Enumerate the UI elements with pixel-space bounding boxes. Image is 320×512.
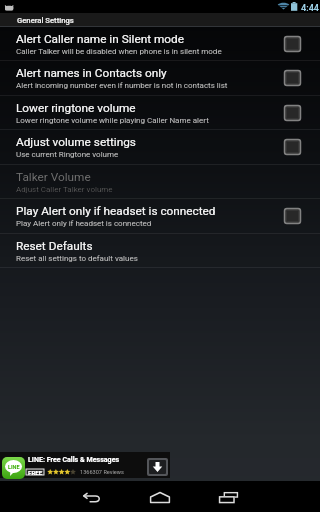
button[interactable]: Alert names in Contacts only [0,61,320,96]
staticText: Adjust volume settings [16,135,136,149]
button[interactable]: Play Alert only if headset is connected [0,199,320,234]
staticText: FREE [28,469,43,475]
staticText: Talker Volume [16,170,91,184]
staticText: 4:44 [301,2,320,13]
staticText: LINE [8,464,20,470]
staticText: Alert incoming number even if number is … [16,81,228,90]
button[interactable]: Install [146,457,169,477]
button[interactable]: Talker Volume [0,165,320,199]
button[interactable]: Back [68,483,114,512]
button[interactable]: Recent apps [205,482,251,512]
staticText: Lower ringtone volume while playing Call… [16,116,209,125]
button[interactable]: Alert Caller name in Silent mode [0,27,320,61]
staticText: Lower ringtone volume [16,101,136,115]
staticText: Use current Ringtone volume [16,150,119,159]
staticText: General Settings [17,16,74,25]
button[interactable]: Home [137,482,183,512]
staticText: Caller Talker will be disabled when phon… [16,47,222,56]
staticText: Reset Defaults [16,239,93,253]
button[interactable]: Lower ringtone volume [0,96,320,130]
staticText: LINE: Free Calls & Messages [28,455,120,463]
button[interactable]: Adjust volume settings [0,130,320,165]
staticText: Alert Caller name in Silent mode [16,32,184,46]
staticText: 1366307 Reviews [80,469,124,476]
staticText: Adjust Caller Talker volume [16,185,113,194]
button[interactable]: LINE [0,452,170,478]
staticText: Play Alert only if headset is connected [16,204,216,218]
staticText: Play Alert only if headset is connected [16,219,152,228]
button[interactable]: Reset Defaults [0,234,320,268]
staticText: Reset all settings to default values [16,254,138,263]
staticText: Alert names in Contacts only [16,66,167,80]
